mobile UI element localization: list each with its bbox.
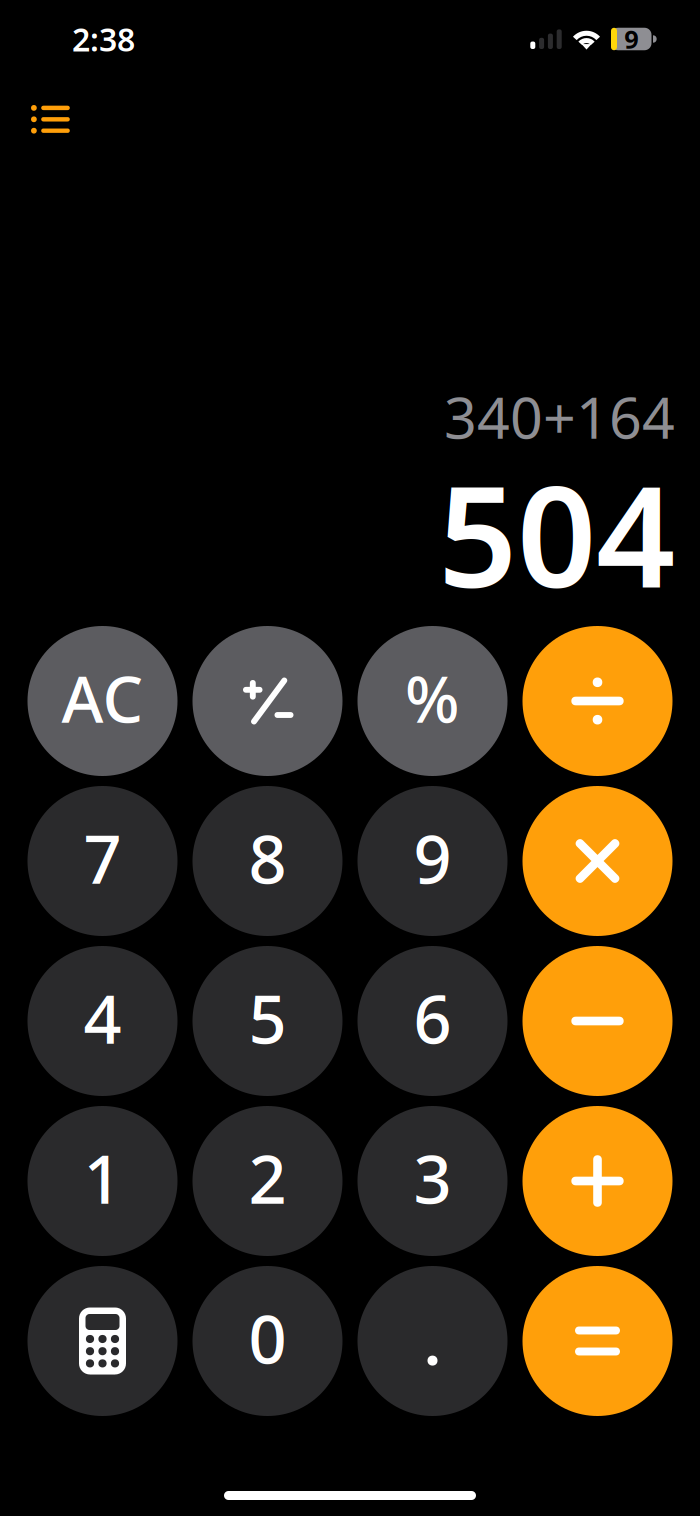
staticText: 8	[248, 814, 286, 902]
button[interactable]: Calculator modes	[27, 1266, 177, 1416]
staticText: 1	[83, 1134, 121, 1222]
button[interactable]: Minus	[522, 946, 672, 1096]
button[interactable]: Plus Minus	[192, 626, 342, 776]
button[interactable]: 2	[192, 1106, 342, 1256]
staticText: 504	[438, 441, 675, 626]
button[interactable]: 0	[192, 1266, 342, 1416]
staticText: AC	[61, 655, 143, 740]
button[interactable]: 3	[357, 1106, 507, 1256]
staticText: 7	[83, 814, 121, 902]
staticText: 340+164	[444, 378, 675, 455]
button[interactable]: Divide	[522, 626, 672, 776]
button[interactable]: All Clear	[27, 626, 177, 776]
button[interactable]: 1	[27, 1106, 177, 1256]
staticText: 6	[413, 974, 451, 1062]
button[interactable]: Decimal point	[357, 1266, 507, 1416]
button[interactable]: Equals	[522, 1266, 672, 1416]
button[interactable]: 5	[192, 946, 342, 1096]
button[interactable]: Percent	[357, 626, 507, 776]
button[interactable]: 9	[357, 786, 507, 936]
button[interactable]: 7	[27, 786, 177, 936]
staticText: %	[405, 655, 460, 740]
button[interactable]: History	[0, 60, 96, 160]
staticText: 9	[624, 22, 638, 56]
staticText: 5	[248, 974, 286, 1062]
button[interactable]: Plus	[522, 1106, 672, 1256]
button[interactable]: 8	[192, 786, 342, 936]
staticText: 4	[83, 974, 121, 1062]
staticText: 2:38	[72, 18, 135, 60]
staticText: 3	[413, 1134, 451, 1222]
staticText: 9	[413, 814, 451, 902]
staticText: 0	[248, 1294, 286, 1382]
staticText: 2	[248, 1134, 286, 1222]
button[interactable]: 6	[357, 946, 507, 1096]
button[interactable]: 4	[27, 946, 177, 1096]
button[interactable]: Multiply	[522, 786, 672, 936]
